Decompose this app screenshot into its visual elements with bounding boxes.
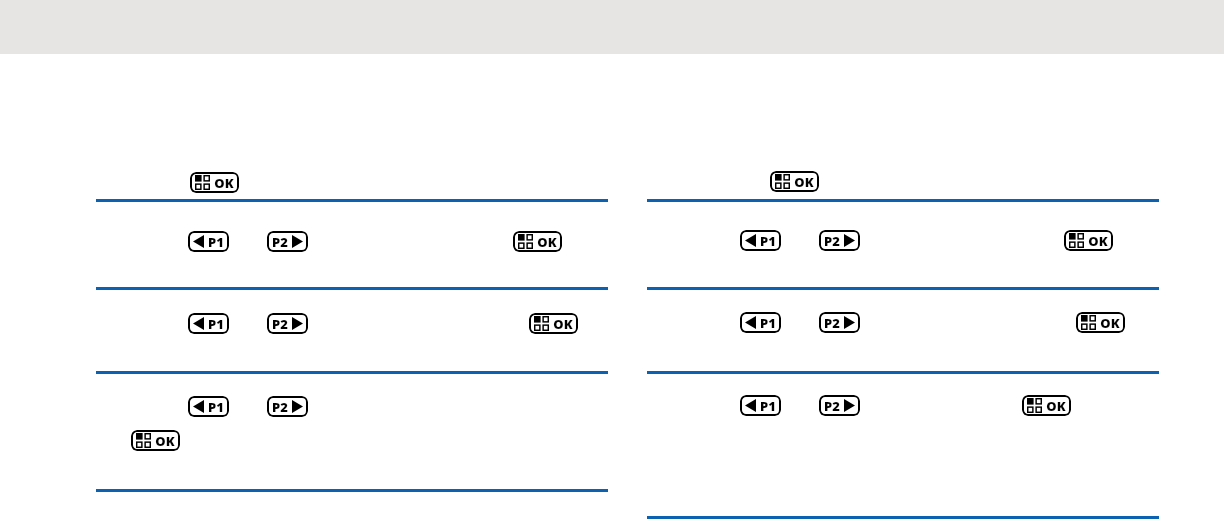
staticText: OK bbox=[553, 315, 573, 333]
button[interactable]: Left P1 key bbox=[740, 395, 781, 416]
button[interactable]: Right P2 key bbox=[267, 231, 308, 252]
staticText: OK bbox=[1100, 314, 1120, 332]
staticText: P2 bbox=[272, 315, 288, 333]
staticText: OK bbox=[537, 233, 557, 251]
button[interactable]: Left P1 key bbox=[188, 313, 229, 334]
button[interactable]: Menu OK key bbox=[529, 313, 578, 334]
staticText: P1 bbox=[760, 397, 776, 415]
button[interactable]: Menu OK key bbox=[1022, 395, 1071, 416]
staticText: P2 bbox=[824, 397, 840, 415]
staticText: P2 bbox=[272, 398, 288, 416]
button[interactable]: Left P1 key bbox=[188, 396, 229, 417]
button[interactable]: Menu OK key bbox=[131, 430, 180, 451]
staticText: OK bbox=[794, 173, 814, 191]
button[interactable]: Right P2 key bbox=[267, 396, 308, 417]
staticText: OK bbox=[155, 432, 175, 450]
staticText: P2 bbox=[272, 233, 288, 251]
button[interactable]: Menu OK key bbox=[513, 231, 562, 252]
button[interactable]: Right P2 key bbox=[819, 230, 860, 251]
staticText: P1 bbox=[208, 398, 224, 416]
staticText: P1 bbox=[760, 314, 776, 332]
staticText: P2 bbox=[824, 314, 840, 332]
button[interactable]: Right P2 key bbox=[267, 313, 308, 334]
button[interactable]: Menu OK key bbox=[1076, 312, 1125, 333]
button[interactable]: Left P1 key bbox=[740, 312, 781, 333]
staticText: P1 bbox=[208, 233, 224, 251]
staticText: OK bbox=[214, 174, 234, 192]
button[interactable]: Left P1 key bbox=[740, 230, 781, 251]
staticText: OK bbox=[1088, 232, 1108, 250]
button[interactable]: Menu OK key bbox=[190, 172, 239, 193]
staticText: P1 bbox=[760, 232, 776, 250]
button[interactable]: Menu OK key bbox=[1064, 230, 1113, 251]
button[interactable]: Right P2 key bbox=[819, 395, 860, 416]
button[interactable]: Left P1 key bbox=[188, 231, 229, 252]
staticText: OK bbox=[1046, 397, 1066, 415]
staticText: P1 bbox=[208, 315, 224, 333]
button[interactable]: Right P2 key bbox=[819, 312, 860, 333]
button[interactable]: Menu OK key bbox=[770, 171, 819, 192]
staticText: P2 bbox=[824, 232, 840, 250]
